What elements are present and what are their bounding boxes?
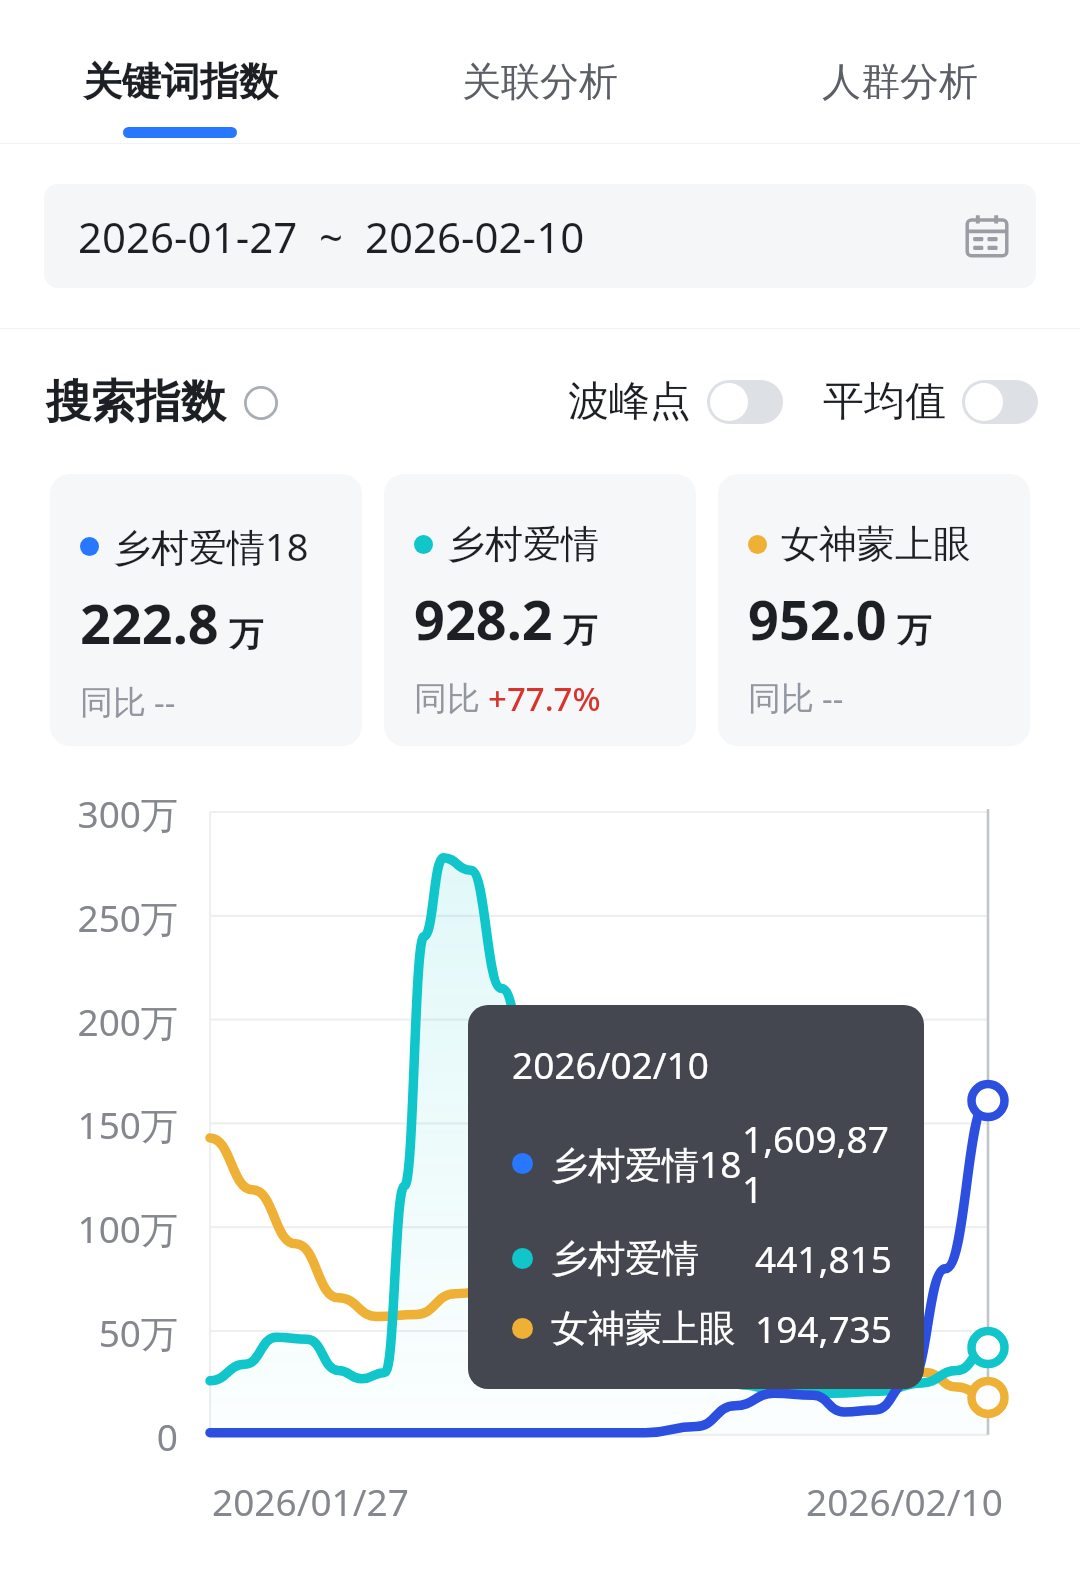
staticText: 同比 [414, 678, 480, 720]
staticText: 300万 [0, 788, 178, 839]
staticText: +77.7% [488, 676, 601, 721]
button[interactable]: 2026-01-27 ~ 2026-02-10 [44, 184, 1036, 288]
other: Help [244, 386, 278, 420]
staticText: 万 [563, 609, 597, 652]
staticText: 关键词指数 [83, 57, 278, 106]
staticText: -- [822, 676, 844, 721]
staticText: 乡村爱情 [447, 520, 599, 568]
staticText: 200万 [0, 996, 178, 1047]
staticText: 250万 [0, 892, 178, 943]
staticText: 952.0 [748, 582, 887, 656]
staticText: 928.2 [414, 582, 553, 656]
staticText: 441,815 [755, 1233, 892, 1283]
button[interactable]: 平均值 [823, 368, 1038, 436]
button[interactable]: 乡村爱情 [384, 474, 696, 746]
staticText: 万 [897, 609, 931, 652]
staticText: 同比 [748, 678, 814, 720]
staticText: 万 [229, 613, 263, 656]
button[interactable]: 波峰点 [568, 368, 783, 436]
staticText: 222.8 [80, 586, 219, 660]
staticText: 乡村爱情18 [113, 520, 309, 572]
staticText: 波峰点 [568, 376, 691, 428]
staticText: 乡村爱情18 [551, 1138, 742, 1189]
button[interactable]: 乡村爱情18 [50, 474, 362, 746]
staticText: 乡村爱情 [551, 1235, 699, 1282]
staticText: 人群分析 [822, 57, 978, 106]
staticText: 150万 [0, 1099, 178, 1150]
staticText: 2026/02/10 [512, 1039, 709, 1089]
staticText: 平均值 [823, 376, 946, 428]
staticText: 100万 [0, 1203, 178, 1254]
staticText: 2026/02/10 [806, 1476, 1003, 1526]
staticText: 2026/01/27 [212, 1476, 409, 1526]
staticText: 1,609,871 [742, 1113, 892, 1213]
staticText: 2026-01-27 ~ 2026-02-10 [78, 208, 585, 265]
staticText: 关联分析 [462, 57, 618, 106]
staticText: 搜索指数 [46, 374, 226, 431]
button[interactable]: 搜索指数 [46, 366, 278, 439]
button[interactable]: 人群分析 [720, 0, 1080, 143]
button[interactable]: 女神蒙上眼 [718, 474, 1030, 746]
other: Select date range [964, 213, 1010, 259]
staticText: 0 [0, 1411, 178, 1461]
button[interactable]: 关联分析 [360, 0, 720, 143]
button[interactable]: 关键词指数 [0, 0, 360, 143]
staticText: 女神蒙上眼 [551, 1305, 736, 1352]
staticText: 同比 [80, 682, 146, 724]
staticText: 女神蒙上眼 [781, 520, 971, 568]
staticText: -- [154, 680, 176, 725]
staticText: 50万 [0, 1307, 178, 1358]
staticText: 194,735 [755, 1303, 892, 1353]
